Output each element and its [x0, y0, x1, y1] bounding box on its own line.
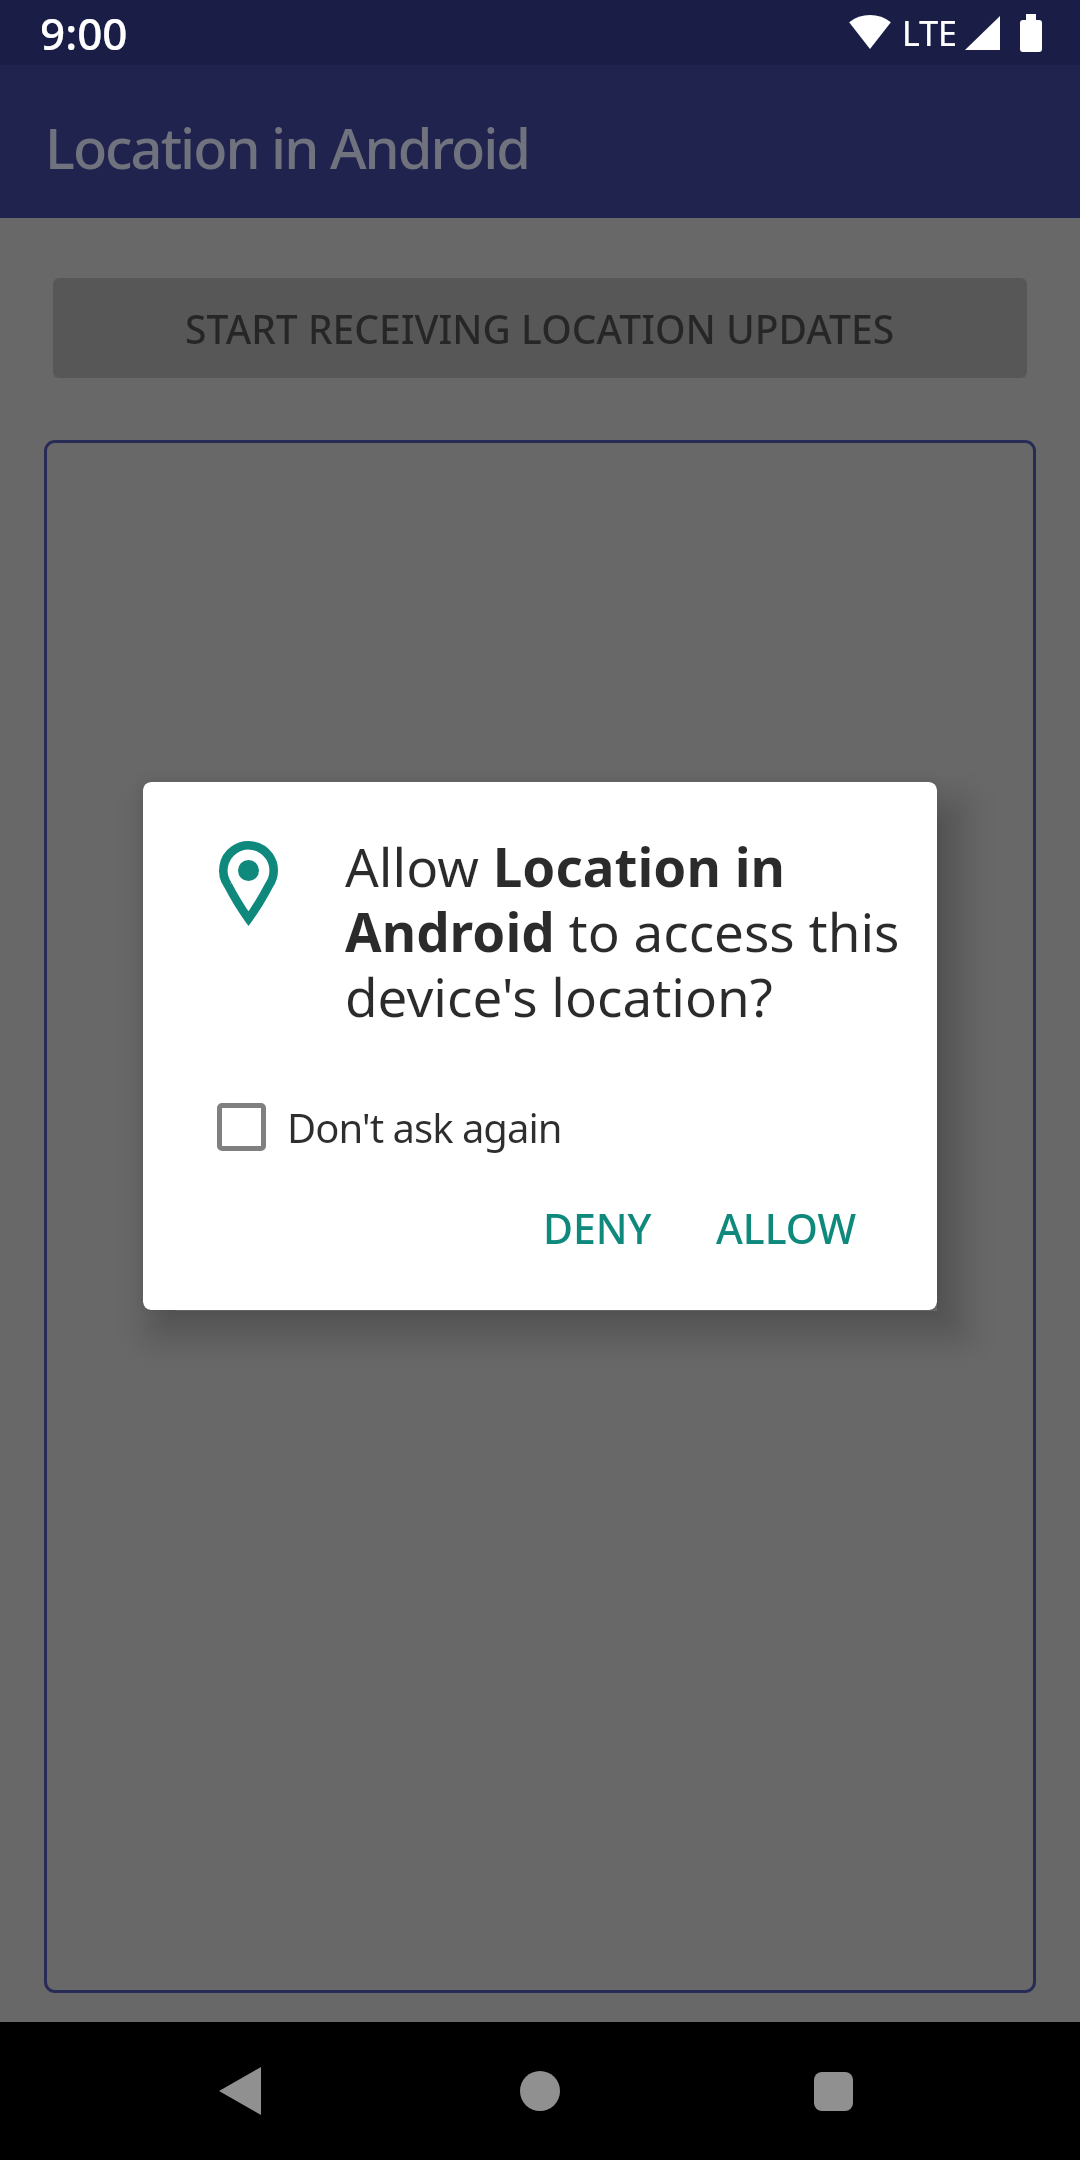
button[interactable] — [205, 2056, 275, 2126]
staticText: START RECEIVING LOCATION UPDATES — [185, 302, 895, 355]
button[interactable] — [505, 2056, 575, 2126]
staticText: DENY — [543, 1200, 652, 1256]
staticText: 9:00 — [40, 3, 128, 63]
staticText: Location in Android — [45, 109, 530, 185]
button[interactable]: DENY — [523, 1188, 672, 1268]
staticText: ALLOW — [716, 1200, 857, 1256]
button[interactable]: Don't ask again — [217, 1100, 562, 1154]
button[interactable]: START RECEIVING LOCATION UPDATES — [53, 278, 1027, 378]
staticText: Allow Location in Android to access this… — [345, 830, 900, 1033]
staticText: Don't ask again — [287, 1100, 562, 1154]
button[interactable]: ALLOW — [696, 1188, 877, 1268]
staticText: LTE — [902, 10, 957, 56]
button[interactable] — [798, 2056, 868, 2126]
